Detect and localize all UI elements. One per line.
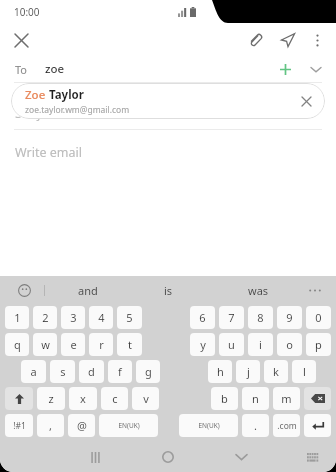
staticText: r — [99, 337, 104, 352]
button[interactable]: Change keyboard — [300, 444, 326, 470]
button[interactable]: , — [37, 414, 64, 437]
button[interactable]: Hide keyboard — [228, 444, 254, 470]
button[interactable]: Enter — [304, 414, 331, 437]
button[interactable]: !#1 — [5, 414, 33, 437]
button[interactable]: h — [208, 360, 232, 383]
button[interactable]: was — [236, 277, 280, 303]
staticText: m — [281, 391, 292, 406]
staticText: o — [286, 337, 293, 352]
button[interactable]: and — [66, 277, 110, 303]
button[interactable]: x — [69, 387, 97, 410]
staticText: 6 — [199, 310, 206, 325]
button[interactable]: r — [89, 333, 113, 356]
staticText: 8 — [257, 310, 264, 325]
staticText: g — [145, 364, 152, 379]
button[interactable]: Expand recipients — [304, 57, 328, 81]
button[interactable]: 6 — [190, 306, 215, 329]
staticText: h — [217, 364, 224, 379]
button[interactable]: v — [132, 387, 159, 410]
button[interactable]: u — [219, 333, 244, 356]
button[interactable]: d — [79, 360, 104, 383]
button[interactable]: More options — [304, 27, 330, 53]
staticText: Zoe — [25, 87, 46, 103]
staticText: 9 — [286, 310, 293, 325]
button[interactable]: . — [242, 414, 269, 437]
button[interactable]: l — [292, 360, 316, 383]
button[interactable]: 5 — [117, 306, 142, 329]
staticText: zoe.taylor.wm@gmail.com — [25, 104, 130, 116]
staticText: e — [70, 337, 77, 352]
button[interactable]: j — [236, 360, 260, 383]
button[interactable]: Home — [155, 444, 181, 470]
button[interactable]: w — [33, 333, 57, 356]
button[interactable]: EN(UK) — [99, 414, 158, 437]
staticText: u — [228, 337, 235, 352]
button[interactable]: More suggestions — [304, 279, 326, 301]
button[interactable]: .com — [273, 414, 300, 437]
staticText: 1 — [14, 310, 21, 325]
button[interactable]: y — [190, 333, 215, 356]
staticText: s — [60, 364, 66, 379]
staticText: y — [200, 337, 206, 352]
button[interactable]: Backspace — [304, 387, 331, 410]
button[interactable]: Shift — [5, 387, 33, 410]
staticText: 10:00 — [14, 5, 40, 19]
button[interactable]: 9 — [277, 306, 302, 329]
staticText: is — [164, 283, 173, 298]
staticText: 2 — [42, 310, 49, 325]
staticText: zoe — [45, 61, 65, 77]
button[interactable]: a — [21, 360, 46, 383]
button[interactable]: Attach file — [241, 26, 269, 54]
button[interactable]: 0 — [306, 306, 331, 329]
staticText: . — [254, 418, 257, 433]
button[interactable]: f — [108, 360, 132, 383]
button[interactable]: m — [273, 387, 300, 410]
button[interactable]: Add recipient — [273, 57, 297, 81]
button[interactable]: p — [306, 333, 331, 356]
staticText: n — [252, 391, 259, 406]
button[interactable]: @ — [68, 414, 95, 437]
button[interactable]: z — [37, 387, 65, 410]
staticText: Taylor — [46, 87, 84, 103]
button[interactable]: n — [242, 387, 269, 410]
button[interactable]: i — [248, 333, 273, 356]
button[interactable]: 2 — [33, 306, 57, 329]
button[interactable]: s — [50, 360, 75, 383]
button[interactable]: o — [277, 333, 302, 356]
button[interactable]: g — [136, 360, 160, 383]
button[interactable]: Remove recipient — [295, 90, 317, 112]
button[interactable]: 3 — [61, 306, 85, 329]
staticText: @ — [77, 418, 87, 433]
staticText: EN(UK) — [198, 421, 220, 430]
button[interactable]: q — [5, 333, 29, 356]
button[interactable]: t — [117, 333, 142, 356]
button[interactable]: EN(UK) — [179, 414, 238, 437]
button[interactable]: Stickers — [13, 279, 35, 301]
staticText: 4 — [98, 310, 105, 325]
button[interactable]: Send — [274, 26, 302, 54]
staticText: c — [112, 391, 118, 406]
button[interactable]: 4 — [89, 306, 113, 329]
button[interactable]: Recents — [82, 444, 108, 470]
button[interactable]: 1 — [5, 306, 29, 329]
button[interactable]: Zoe — [11, 83, 325, 119]
button[interactable]: is — [146, 277, 190, 303]
staticText: t — [128, 337, 132, 352]
button[interactable]: b — [211, 387, 238, 410]
button[interactable]: k — [264, 360, 288, 383]
staticText: 3 — [70, 310, 77, 325]
staticText: 0 — [315, 310, 322, 325]
staticText: and — [78, 283, 98, 298]
staticText: p — [315, 337, 322, 352]
button[interactable]: e — [61, 333, 85, 356]
staticText: To — [15, 62, 28, 77]
button[interactable]: Close — [7, 26, 35, 54]
button[interactable]: 7 — [219, 306, 244, 329]
staticText: , — [49, 418, 52, 433]
staticText: l — [303, 364, 306, 379]
button[interactable]: 8 — [248, 306, 273, 329]
staticText: !#1 — [13, 420, 26, 432]
staticText: 7 — [228, 310, 235, 325]
button[interactable]: c — [101, 387, 128, 410]
staticText: i — [259, 337, 262, 352]
